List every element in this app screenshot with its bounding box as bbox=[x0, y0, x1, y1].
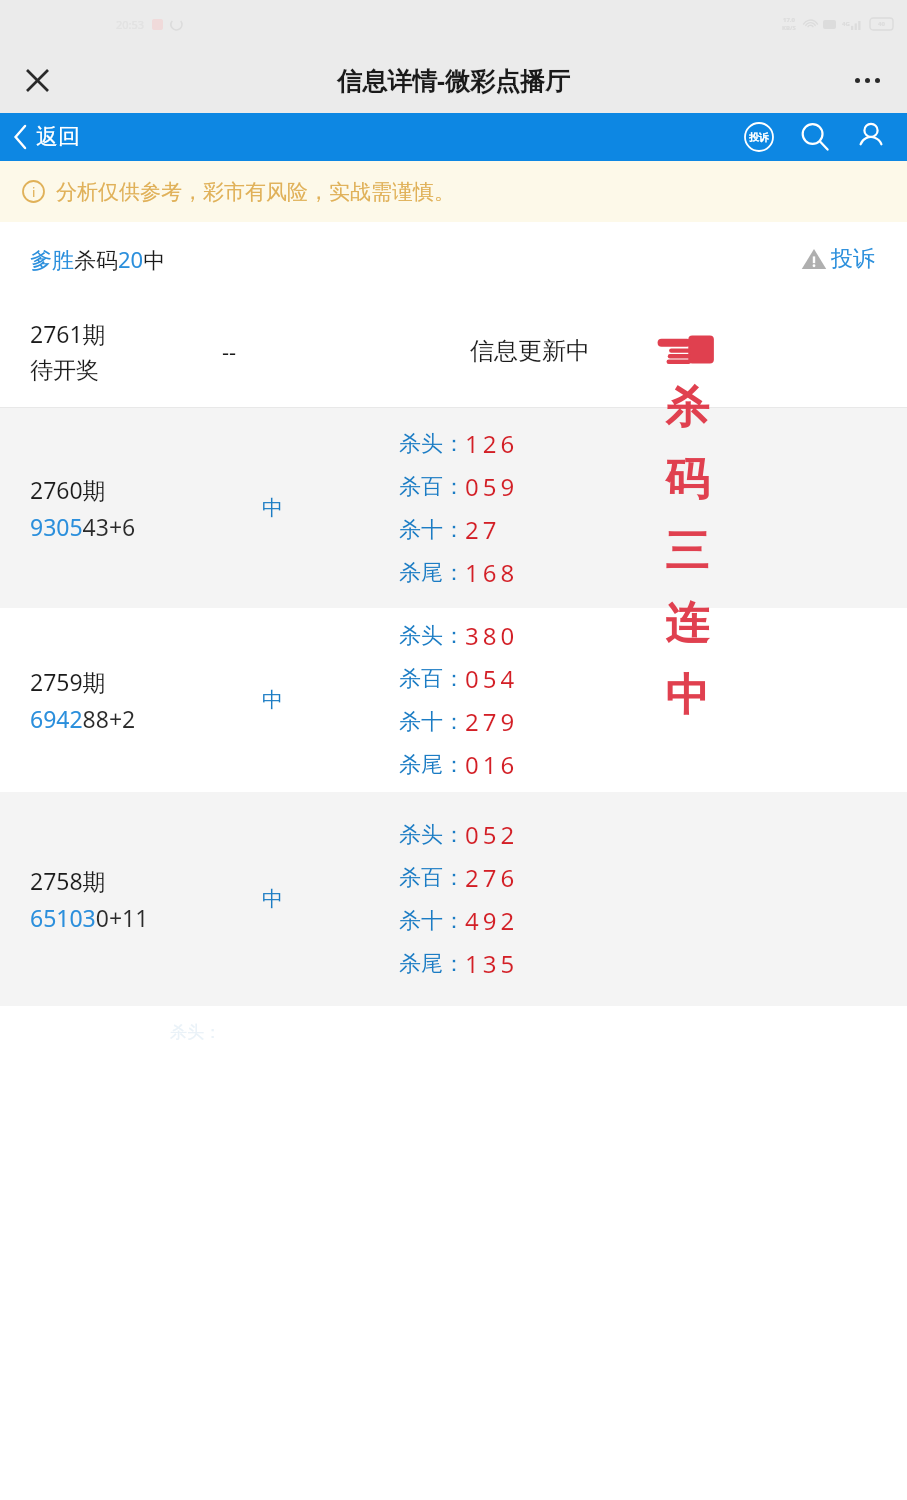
staticText: 码 bbox=[665, 452, 709, 507]
staticText: 中 bbox=[262, 886, 283, 912]
staticText: 4G bbox=[842, 20, 850, 28]
staticText: 492 bbox=[465, 904, 519, 937]
staticText: 杀百： bbox=[399, 864, 465, 892]
staticText: 返回 bbox=[36, 123, 80, 151]
button[interactable]: 投诉 Complaint bbox=[739, 117, 779, 157]
staticText: 杀百： bbox=[399, 473, 465, 501]
staticText: 信息更新中 bbox=[470, 336, 590, 366]
staticText: 052 bbox=[465, 818, 519, 851]
staticText: 杀尾： bbox=[399, 950, 465, 978]
button[interactable]: 返回 bbox=[14, 123, 90, 151]
staticText: 2760期 bbox=[30, 474, 106, 505]
staticText: 276 bbox=[465, 861, 519, 894]
button[interactable]: 2760期 bbox=[0, 408, 907, 608]
staticText: 连 bbox=[665, 596, 709, 651]
staticText: 016 bbox=[465, 748, 519, 781]
button[interactable]: 2758期 bbox=[0, 792, 907, 1006]
staticText: 杀头： bbox=[399, 821, 465, 849]
staticText: 杀头： bbox=[170, 1022, 221, 1043]
staticText: 杀尾： bbox=[399, 751, 465, 779]
staticText: 信息详情-微彩点播厅 bbox=[337, 63, 571, 97]
staticText: 059 bbox=[465, 470, 519, 503]
staticText: i bbox=[32, 183, 36, 201]
staticText: 930543+6 bbox=[30, 511, 136, 542]
staticText: 投诉 bbox=[749, 131, 769, 144]
staticText: 投诉 bbox=[831, 245, 875, 273]
button[interactable]: 2759期 bbox=[0, 608, 907, 792]
staticText: 中 bbox=[262, 495, 283, 521]
staticText: 054 bbox=[465, 662, 519, 695]
button[interactable]: Search bbox=[795, 117, 835, 157]
staticText: 杀十： bbox=[399, 907, 465, 935]
staticText: 待开奖 bbox=[30, 356, 99, 385]
staticText: 杀头： bbox=[399, 430, 465, 458]
staticText: 20:53 bbox=[116, 17, 145, 32]
button[interactable]: Close bbox=[12, 55, 62, 105]
staticText: 分析仅供参考，彩市有风险，实战需谨慎。 bbox=[56, 179, 455, 205]
staticText: 380 bbox=[465, 619, 519, 652]
button[interactable]: 投诉 bbox=[801, 245, 875, 273]
staticText: 杀十： bbox=[399, 516, 465, 544]
staticText: 40 bbox=[878, 20, 885, 28]
staticText: 168 bbox=[465, 556, 519, 589]
staticText: 2758期 bbox=[30, 865, 106, 896]
staticText: 651030+11 bbox=[30, 902, 149, 933]
staticText: 三 bbox=[665, 524, 709, 579]
staticText: 135 bbox=[465, 947, 519, 980]
staticText: -- bbox=[222, 336, 237, 366]
staticText: 杀头： bbox=[399, 622, 465, 650]
staticText: 694288+2 bbox=[30, 703, 136, 734]
staticText: 126 bbox=[465, 427, 519, 460]
staticText: 2761期 bbox=[30, 318, 106, 349]
staticText: 2759期 bbox=[30, 666, 106, 697]
staticText: 中 bbox=[262, 687, 283, 713]
staticText: 杀百： bbox=[399, 665, 465, 693]
staticText: 中 bbox=[665, 668, 709, 723]
staticText: 27 bbox=[465, 513, 501, 546]
staticText: 17.0 bbox=[783, 16, 795, 24]
staticText: 杀十： bbox=[399, 708, 465, 736]
button[interactable]: More options bbox=[841, 54, 893, 106]
button[interactable]: Profile bbox=[851, 117, 891, 157]
staticText: 杀 bbox=[665, 380, 709, 435]
staticText: KB/S bbox=[782, 24, 796, 32]
staticText: 279 bbox=[465, 705, 519, 738]
staticText: 杀尾： bbox=[399, 559, 465, 587]
button[interactable]: 爹胜杀码20中 bbox=[30, 244, 166, 274]
